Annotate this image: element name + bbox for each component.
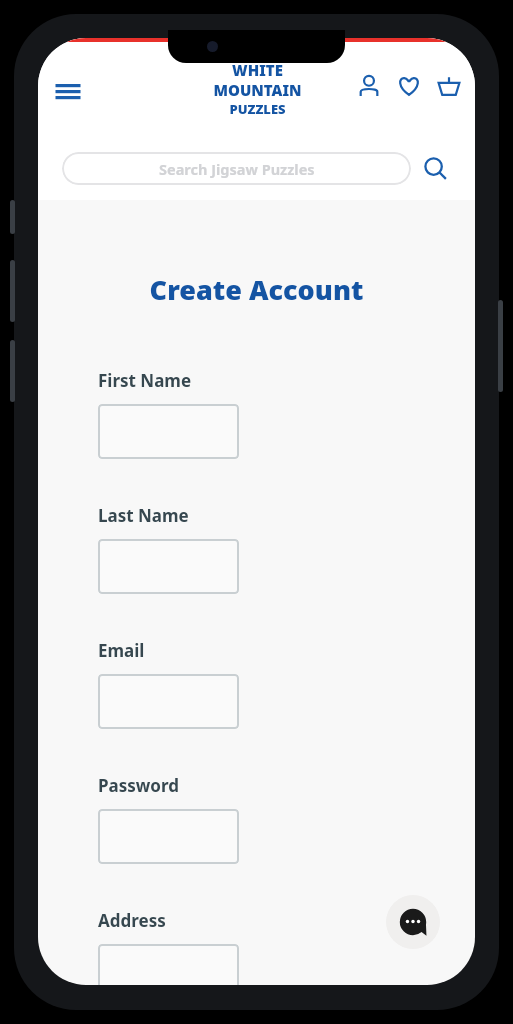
staticText: First Name <box>98 369 192 392</box>
button[interactable]: Chat <box>386 895 440 949</box>
staticText: Search Jigsaw Puzzles <box>159 159 315 179</box>
staticText: Create Account <box>38 271 475 308</box>
button[interactable]: WHITE <box>197 60 317 118</box>
button[interactable]: Search <box>421 154 451 184</box>
button[interactable]: Email <box>98 674 239 729</box>
staticText: Email <box>98 639 145 662</box>
button[interactable]: Account <box>349 66 389 106</box>
staticText: Password <box>98 774 179 797</box>
button[interactable]: Menu <box>46 68 90 112</box>
button[interactable]: Address <box>98 944 239 985</box>
button[interactable]: Last Name <box>98 539 239 594</box>
staticText: WHITE <box>232 60 283 80</box>
button[interactable]: Search Jigsaw Puzzles <box>62 152 411 185</box>
staticText: Last Name <box>98 504 189 527</box>
button[interactable]: Wishlist <box>389 66 429 106</box>
staticText: Address <box>98 909 166 932</box>
staticText: PUZZLES <box>229 100 286 118</box>
staticText: MOUNTAIN <box>213 80 302 100</box>
button[interactable]: First Name <box>98 404 239 459</box>
button[interactable]: Cart <box>429 66 469 106</box>
button[interactable]: Password <box>98 809 239 864</box>
